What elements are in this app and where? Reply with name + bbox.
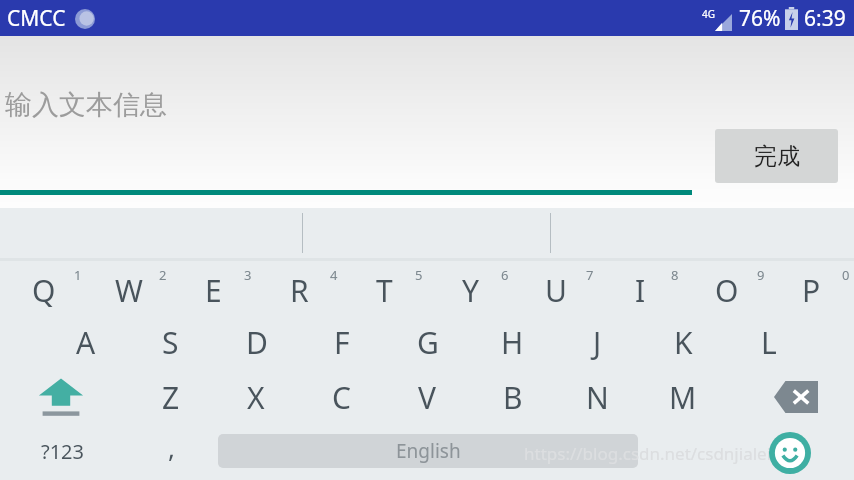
staticText: U (545, 270, 567, 311)
button[interactable]: G (385, 315, 470, 369)
button[interactable]: Z (128, 369, 213, 425)
staticText: P (802, 270, 821, 311)
staticText: 完成 (754, 142, 800, 171)
staticText: 9 (757, 266, 765, 284)
button[interactable]: D (214, 315, 299, 369)
staticText: https://blog.csdn.net/csdnjialei (524, 442, 772, 465)
staticText: 8 (671, 266, 679, 284)
staticText: F (334, 322, 350, 363)
staticText: S (162, 322, 179, 363)
staticText: O (715, 270, 739, 311)
button[interactable]: W (86, 261, 171, 315)
button[interactable]: O (684, 261, 769, 315)
staticText: J (593, 322, 602, 363)
button[interactable]: X (213, 369, 298, 425)
button[interactable]: M (640, 369, 725, 425)
staticText: B (503, 377, 523, 418)
staticText: T (376, 270, 393, 311)
staticText: CMCC (7, 4, 66, 33)
button[interactable]: P (769, 261, 854, 315)
staticText: D (246, 322, 268, 363)
button[interactable]: T (342, 261, 427, 315)
staticText: 5 (415, 266, 423, 284)
button[interactable]: C (299, 369, 384, 425)
button[interactable]: S (128, 315, 213, 369)
button[interactable]: F (299, 315, 384, 369)
staticText: V (418, 377, 436, 418)
staticText: R (290, 270, 309, 311)
button[interactable]: U (513, 261, 598, 315)
button[interactable]: E (171, 261, 256, 315)
staticText: , (168, 430, 175, 465)
staticText: 输入文本信息 (5, 88, 167, 122)
staticText: ?123 (41, 438, 84, 465)
button[interactable]: Backspace (753, 369, 838, 425)
staticText: 1 (74, 266, 82, 284)
button[interactable]: Q (1, 261, 86, 315)
staticText: Q (32, 270, 56, 311)
button[interactable]: Y (428, 261, 513, 315)
staticText: English (396, 438, 461, 464)
staticText: W (115, 270, 143, 311)
staticText: 0 (842, 266, 850, 284)
staticText: I (635, 270, 646, 311)
staticText: Y (462, 270, 479, 311)
button[interactable]: Emoji (769, 432, 811, 474)
button[interactable]: I (598, 261, 683, 315)
button[interactable]: ?123 (20, 425, 105, 477)
button[interactable]: V (384, 369, 469, 425)
button[interactable]: B (470, 369, 555, 425)
button[interactable]: 完成 (715, 129, 838, 183)
staticText: C (332, 377, 351, 418)
button[interactable]: A (43, 315, 128, 369)
staticText: H (501, 322, 524, 363)
staticText: A (76, 322, 96, 363)
staticText: 3 (244, 266, 252, 284)
staticText: G (417, 322, 439, 363)
button[interactable]: L (726, 315, 811, 369)
button[interactable]: K (641, 315, 726, 369)
staticText: X (247, 377, 265, 418)
staticText: 4G (702, 7, 715, 21)
staticText: L (761, 322, 777, 363)
staticText: 7 (586, 266, 594, 284)
staticText: 2 (159, 266, 167, 284)
staticText: N (586, 377, 609, 418)
staticText: Z (162, 377, 180, 418)
button[interactable]: H (470, 315, 555, 369)
button[interactable]: , (129, 425, 214, 477)
button[interactable]: R (257, 261, 342, 315)
staticText: E (205, 270, 222, 311)
staticText: 6 (501, 266, 509, 284)
staticText: K (674, 322, 693, 363)
button[interactable]: English (218, 434, 638, 468)
staticText: M (669, 377, 697, 418)
staticText: 76% (739, 4, 781, 33)
staticText: 4 (330, 266, 338, 284)
button[interactable]: N (555, 369, 640, 425)
button[interactable]: Shift (18, 369, 103, 425)
staticText: 6:39 (804, 4, 846, 33)
button[interactable]: J (555, 315, 640, 369)
